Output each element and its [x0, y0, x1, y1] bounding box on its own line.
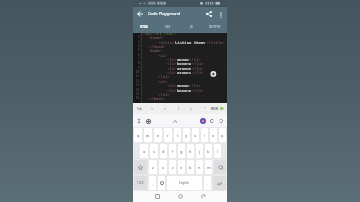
button[interactable]: t [174, 128, 181, 142]
staticText: r [167, 133, 169, 138]
button[interactable]: q [134, 128, 142, 142]
button[interactable]: . [204, 176, 211, 190]
staticText: 11 [136, 74, 140, 78]
button[interactable]: Shift [134, 160, 147, 174]
button[interactable]: RUN [211, 106, 225, 111]
button[interactable]: More options [215, 9, 226, 20]
staticText: o [212, 133, 215, 138]
staticText: </body> [149, 96, 166, 100]
staticText: <title> [158, 40, 175, 44]
staticText: RUN [211, 107, 219, 111]
staticText: e [157, 133, 160, 138]
button[interactable]: k [205, 144, 212, 158]
button[interactable]: c [169, 160, 176, 174]
button[interactable]: Redo [217, 117, 225, 125]
button[interactable]: j [196, 144, 203, 158]
button[interactable]: d [160, 144, 167, 158]
button[interactable]: h [187, 144, 194, 158]
button[interactable]: ?123 [134, 176, 147, 190]
button[interactable]: a [140, 144, 148, 158]
button[interactable]: n [196, 160, 203, 174]
button[interactable]: o [210, 128, 217, 142]
staticText: <li> [167, 61, 177, 65]
button[interactable]: < [146, 103, 159, 114]
staticText: </title> [206, 40, 225, 44]
button[interactable]: HTML [133, 20, 156, 33]
button[interactable]: i [201, 128, 208, 142]
button[interactable]: > [159, 103, 172, 114]
staticText: 15 [136, 92, 140, 96]
staticText: = [190, 106, 193, 111]
staticText: </li> [192, 61, 204, 65]
button[interactable]: Enter [213, 176, 226, 190]
staticText: <li> [167, 57, 177, 61]
staticText: <ul> [158, 53, 168, 57]
button[interactable]: Back [192, 191, 215, 202]
staticText: </ol> [158, 92, 170, 96]
staticText: 10 [136, 70, 140, 74]
button[interactable]: = [185, 103, 198, 114]
staticText: Listing items [175, 40, 206, 44]
staticText: mango [177, 83, 189, 87]
staticText: 9 [138, 66, 140, 70]
staticText: b [189, 165, 192, 170]
button[interactable]: Handwriting [171, 117, 179, 125]
button[interactable]: Recents [145, 191, 169, 202]
staticText: w [146, 133, 150, 138]
button[interactable]: English [167, 176, 202, 190]
button[interactable]: g [178, 144, 185, 158]
staticText: u [194, 133, 197, 138]
button[interactable]: Tab [133, 103, 146, 114]
button[interactable]: CSS [156, 20, 179, 33]
button[interactable]: Home [169, 191, 192, 202]
staticText: z [152, 165, 154, 170]
staticText: t [177, 133, 179, 138]
button[interactable]: l [214, 144, 221, 158]
button[interactable]: Sticker [144, 117, 152, 125]
button[interactable]: Share [203, 8, 215, 20]
staticText: / [178, 106, 180, 111]
button[interactable]: Back [133, 7, 147, 20]
button[interactable]: s [150, 144, 158, 158]
button[interactable]: m [205, 160, 212, 174]
button[interactable]: JS [179, 20, 203, 33]
button[interactable]: y [183, 128, 190, 142]
staticText: g [180, 149, 183, 154]
button[interactable]: b [187, 160, 194, 174]
staticText: </li> [189, 83, 201, 87]
staticText: 12 [136, 79, 140, 83]
button[interactable]: " [198, 103, 211, 114]
staticText: mango [177, 57, 189, 61]
button[interactable]: v [178, 160, 185, 174]
button[interactable]: OUTPUT [203, 20, 227, 33]
button[interactable]: p [219, 128, 226, 142]
button[interactable]: , [149, 176, 156, 190]
button[interactable]: u [192, 128, 199, 142]
button[interactable]: Google Assistant [198, 116, 207, 125]
staticText: > [164, 106, 167, 111]
staticText: 14 [136, 88, 140, 92]
staticText: <li> [167, 66, 177, 70]
staticText: HTML [140, 25, 149, 29]
staticText: p [221, 133, 224, 138]
button[interactable]: Undo [208, 117, 216, 125]
staticText: v [180, 165, 183, 170]
staticText: ?123 [137, 181, 144, 185]
staticText: </head> [149, 44, 166, 48]
staticText: </li> [192, 66, 204, 70]
button[interactable]: / [172, 103, 185, 114]
button[interactable]: f [169, 144, 176, 158]
button[interactable]: x [159, 160, 167, 174]
button[interactable]: Backspace [214, 160, 226, 174]
button[interactable]: Text editing [135, 117, 143, 125]
staticText: n [198, 165, 201, 170]
button[interactable]: w [144, 128, 152, 142]
button[interactable]: z [149, 160, 157, 174]
staticText: </li> [189, 57, 201, 61]
staticText: <head> [149, 35, 164, 39]
button[interactable]: e [154, 128, 162, 142]
button[interactable]: r [164, 128, 172, 142]
button[interactable]: Emoji [158, 176, 165, 190]
staticText: 16 [136, 96, 140, 100]
staticText: <body> [149, 48, 164, 52]
